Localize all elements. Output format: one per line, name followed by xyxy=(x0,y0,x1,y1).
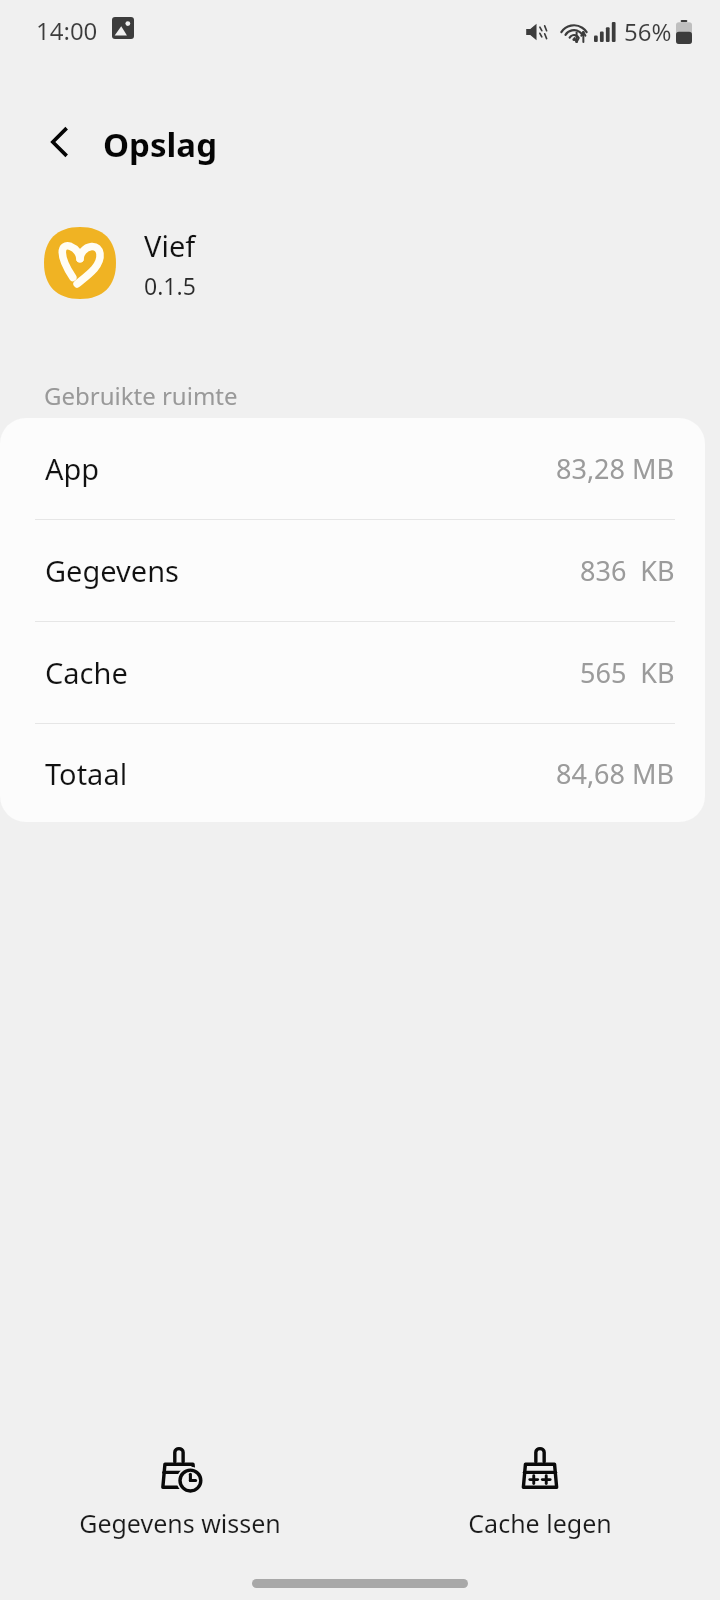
button[interactable]: App xyxy=(0,418,705,519)
button[interactable]: Back xyxy=(26,108,94,176)
button[interactable]: Cache xyxy=(0,622,705,723)
staticText: 83,28 MB xyxy=(556,450,675,487)
staticText: 0.1.5 xyxy=(144,270,196,301)
staticText: Cache legen xyxy=(468,1506,612,1540)
staticText: Opslag xyxy=(103,122,217,167)
staticText: Cache xyxy=(45,653,128,692)
button[interactable]: Gegevens xyxy=(0,520,705,621)
staticText: 56% xyxy=(624,15,672,48)
staticText: Gegevens wissen xyxy=(79,1506,281,1540)
button[interactable]: Totaal xyxy=(0,724,705,822)
staticText: Gegevens xyxy=(45,551,179,590)
staticText: 836 KB xyxy=(580,552,675,589)
button[interactable]: Cache legen xyxy=(360,1432,720,1542)
button[interactable]: Vief xyxy=(0,215,720,311)
staticText: 14:00 xyxy=(36,14,98,47)
staticText: Gebruikte ruimte xyxy=(44,379,238,412)
staticText: Totaal xyxy=(45,754,128,793)
button[interactable]: Gegevens wissen xyxy=(0,1432,360,1542)
staticText: App xyxy=(45,449,100,488)
staticText: 565 KB xyxy=(580,654,675,691)
staticText: 84,68 MB xyxy=(556,755,675,792)
staticText: Vief xyxy=(144,226,196,265)
